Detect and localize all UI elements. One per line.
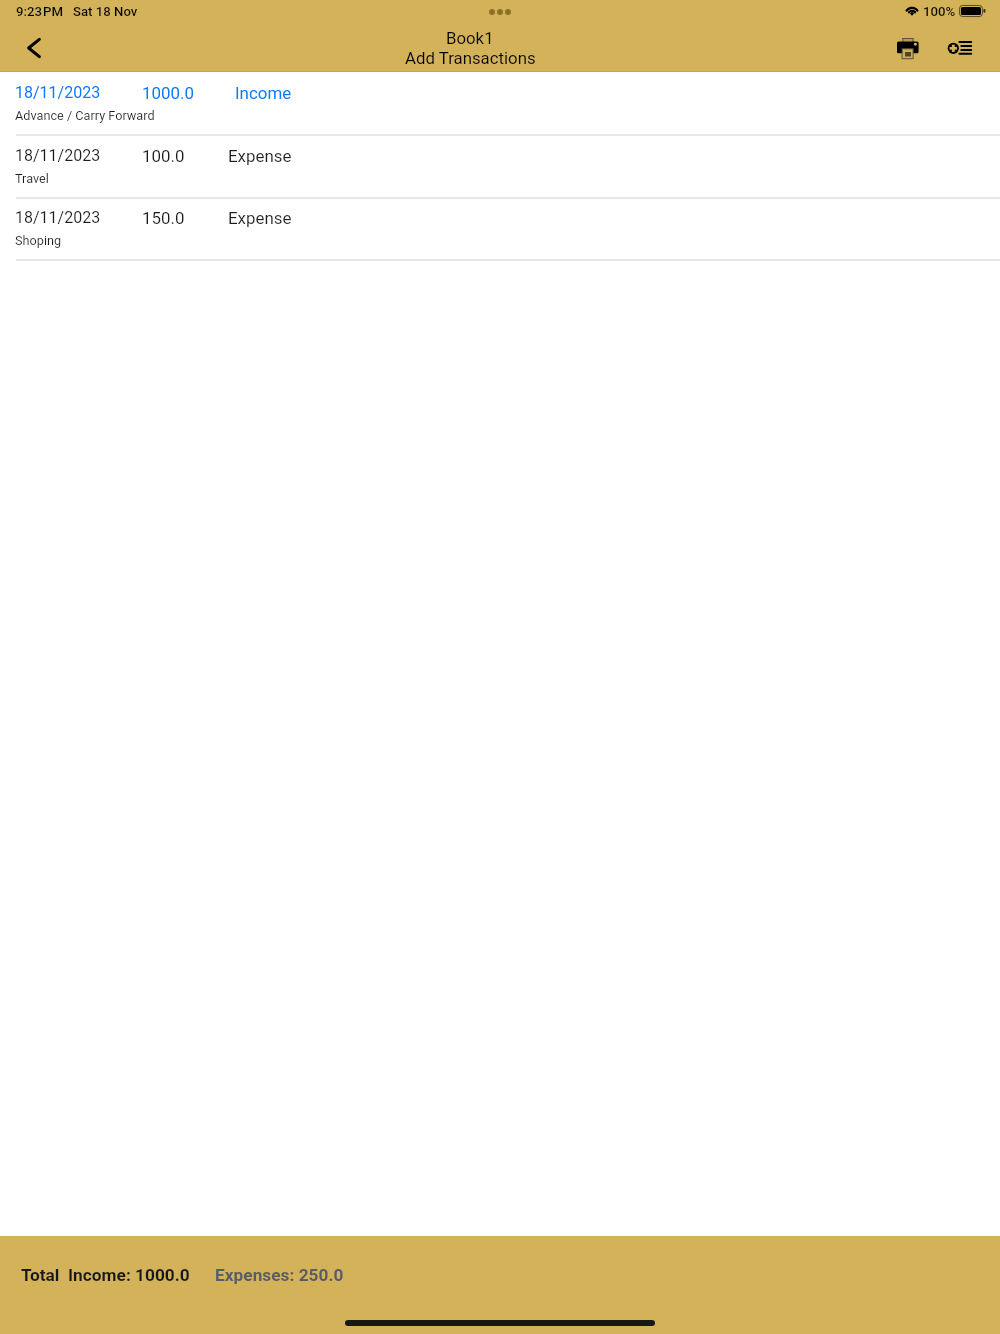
staticText: 18/11/2023: [15, 146, 101, 165]
staticText: Income: [235, 83, 292, 103]
staticText: Add Transactions: [405, 48, 536, 68]
staticText: PM: [43, 4, 63, 19]
staticText: Expense: [228, 146, 292, 166]
staticText: 1000.0: [142, 83, 194, 103]
button[interactable]: Back: [17, 31, 50, 64]
staticText: Total Income: 1000.0: [21, 1265, 190, 1285]
button[interactable]: 18/11/2023: [0, 197, 1000, 262]
staticText: 18/11/2023: [15, 208, 101, 227]
staticText: Shoping: [15, 233, 62, 248]
staticText: Advance / Carry Forward: [15, 108, 155, 123]
button[interactable]: 18/11/2023: [0, 72, 1000, 137]
button[interactable]: 18/11/2023: [0, 135, 1000, 200]
staticText: Sat 18 Nov: [73, 4, 138, 19]
staticText: 18/11/2023: [15, 83, 101, 102]
button[interactable]: Print: [890, 31, 928, 69]
staticText: 9:23: [16, 4, 42, 19]
staticText: 100%: [923, 4, 956, 19]
staticText: Book1: [446, 28, 494, 48]
button[interactable]: Add transaction: [942, 30, 980, 68]
staticText: 100.0: [142, 146, 185, 166]
staticText: 150.0: [142, 208, 185, 228]
staticText: Expenses: 250.0: [215, 1265, 344, 1285]
staticText: Travel: [15, 171, 49, 186]
staticText: Expense: [228, 208, 292, 228]
